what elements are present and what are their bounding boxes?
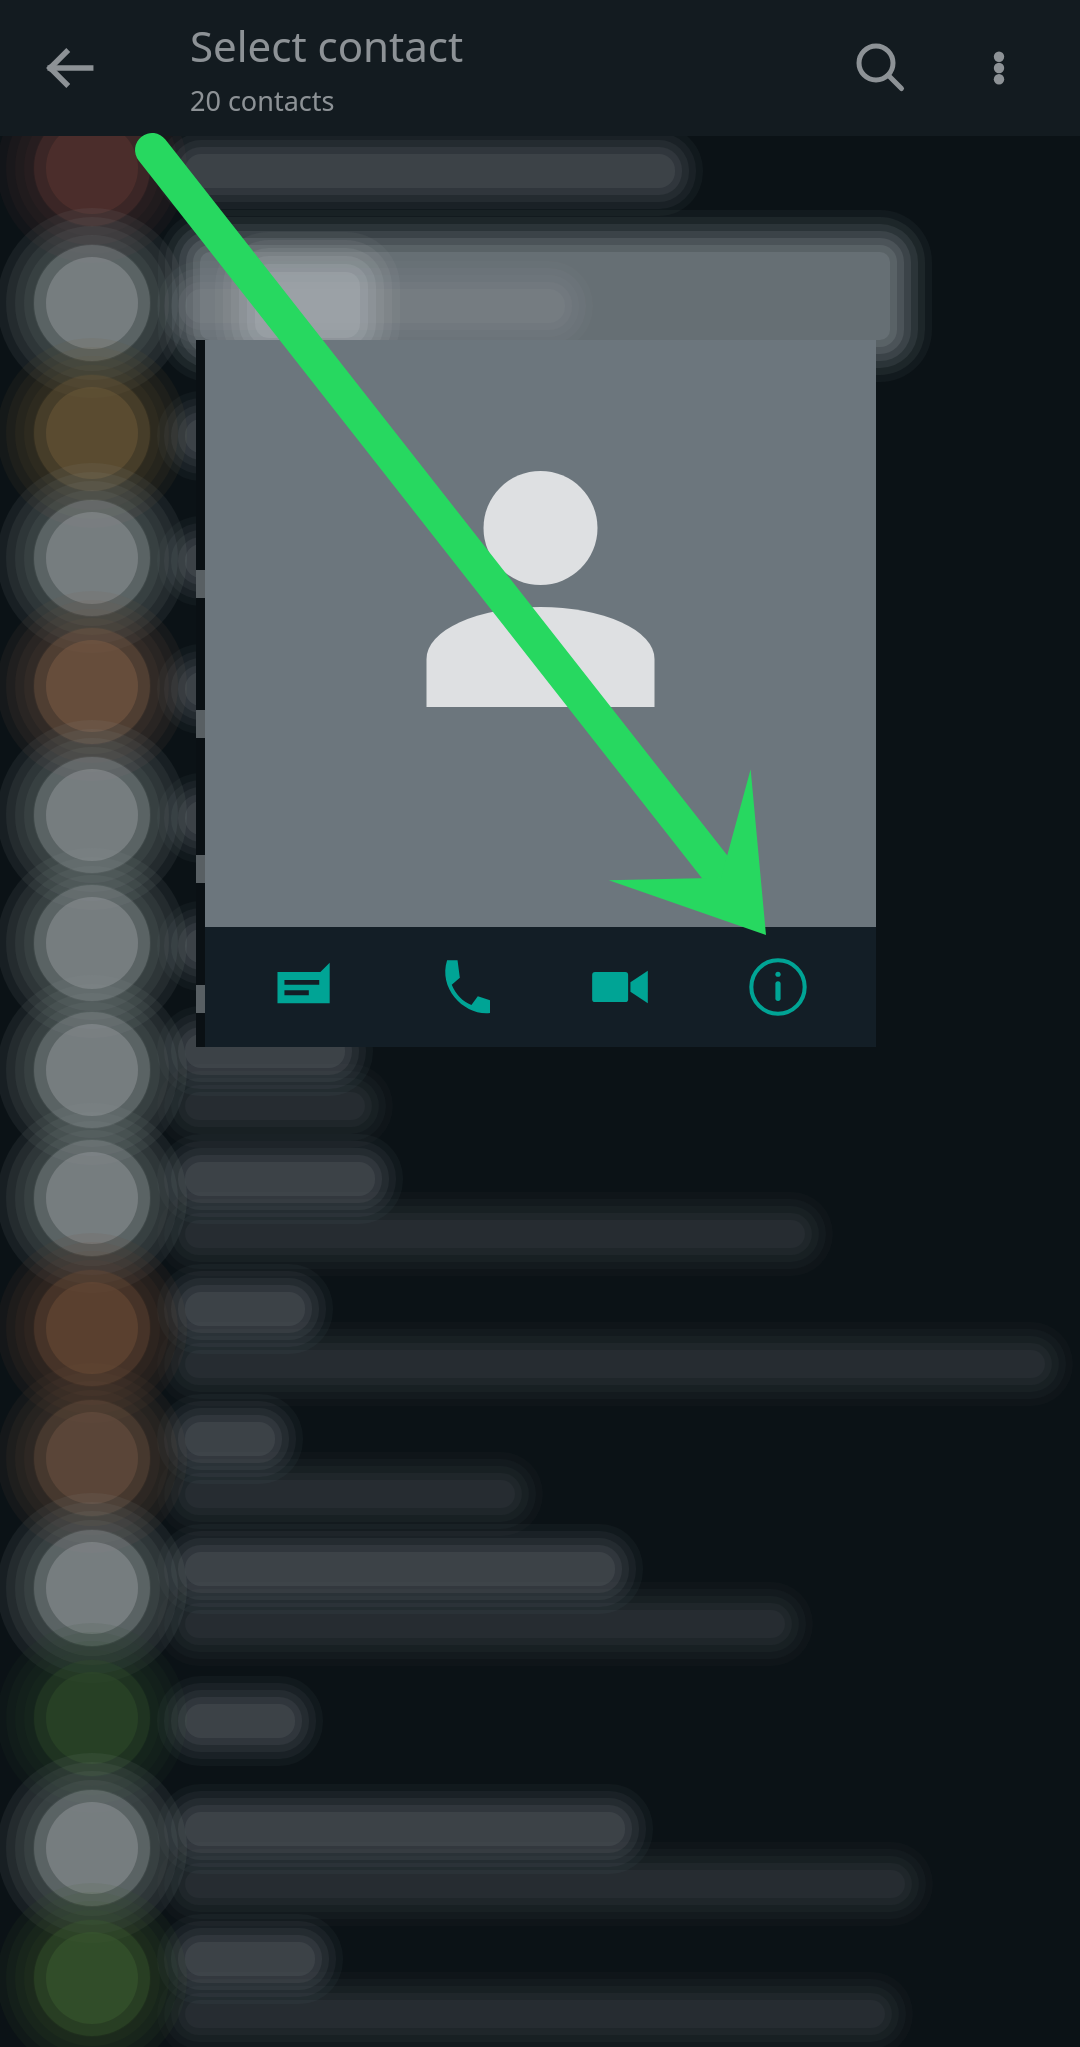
button[interactable]: Contact info — [718, 927, 838, 1047]
button[interactable]: Search — [830, 18, 930, 118]
button[interactable]: Video call — [560, 927, 680, 1047]
button[interactable]: Call — [401, 927, 521, 1047]
button[interactable]: Back — [22, 20, 118, 116]
staticText: Select contact — [190, 17, 464, 74]
button[interactable]: Message — [243, 927, 363, 1047]
button[interactable]: More options — [954, 23, 1044, 113]
staticText: 20 contacts — [190, 82, 335, 119]
